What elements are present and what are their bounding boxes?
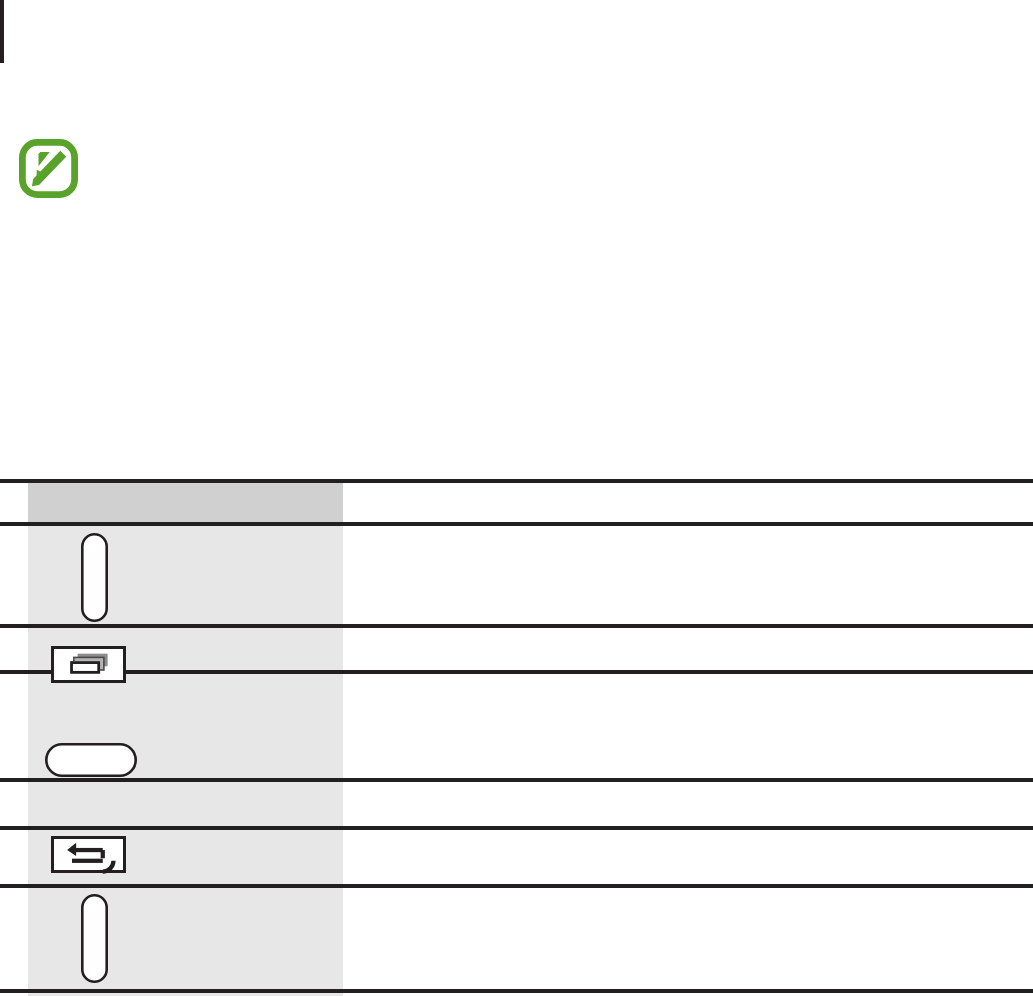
button[interactable]: Volume key	[81, 533, 108, 622]
button[interactable]: Recents key	[51, 646, 126, 683]
button[interactable]: Back key	[51, 836, 126, 873]
button[interactable]: Power key	[81, 894, 108, 983]
button[interactable]: Home key	[45, 743, 137, 777]
other: Note	[19, 139, 78, 198]
